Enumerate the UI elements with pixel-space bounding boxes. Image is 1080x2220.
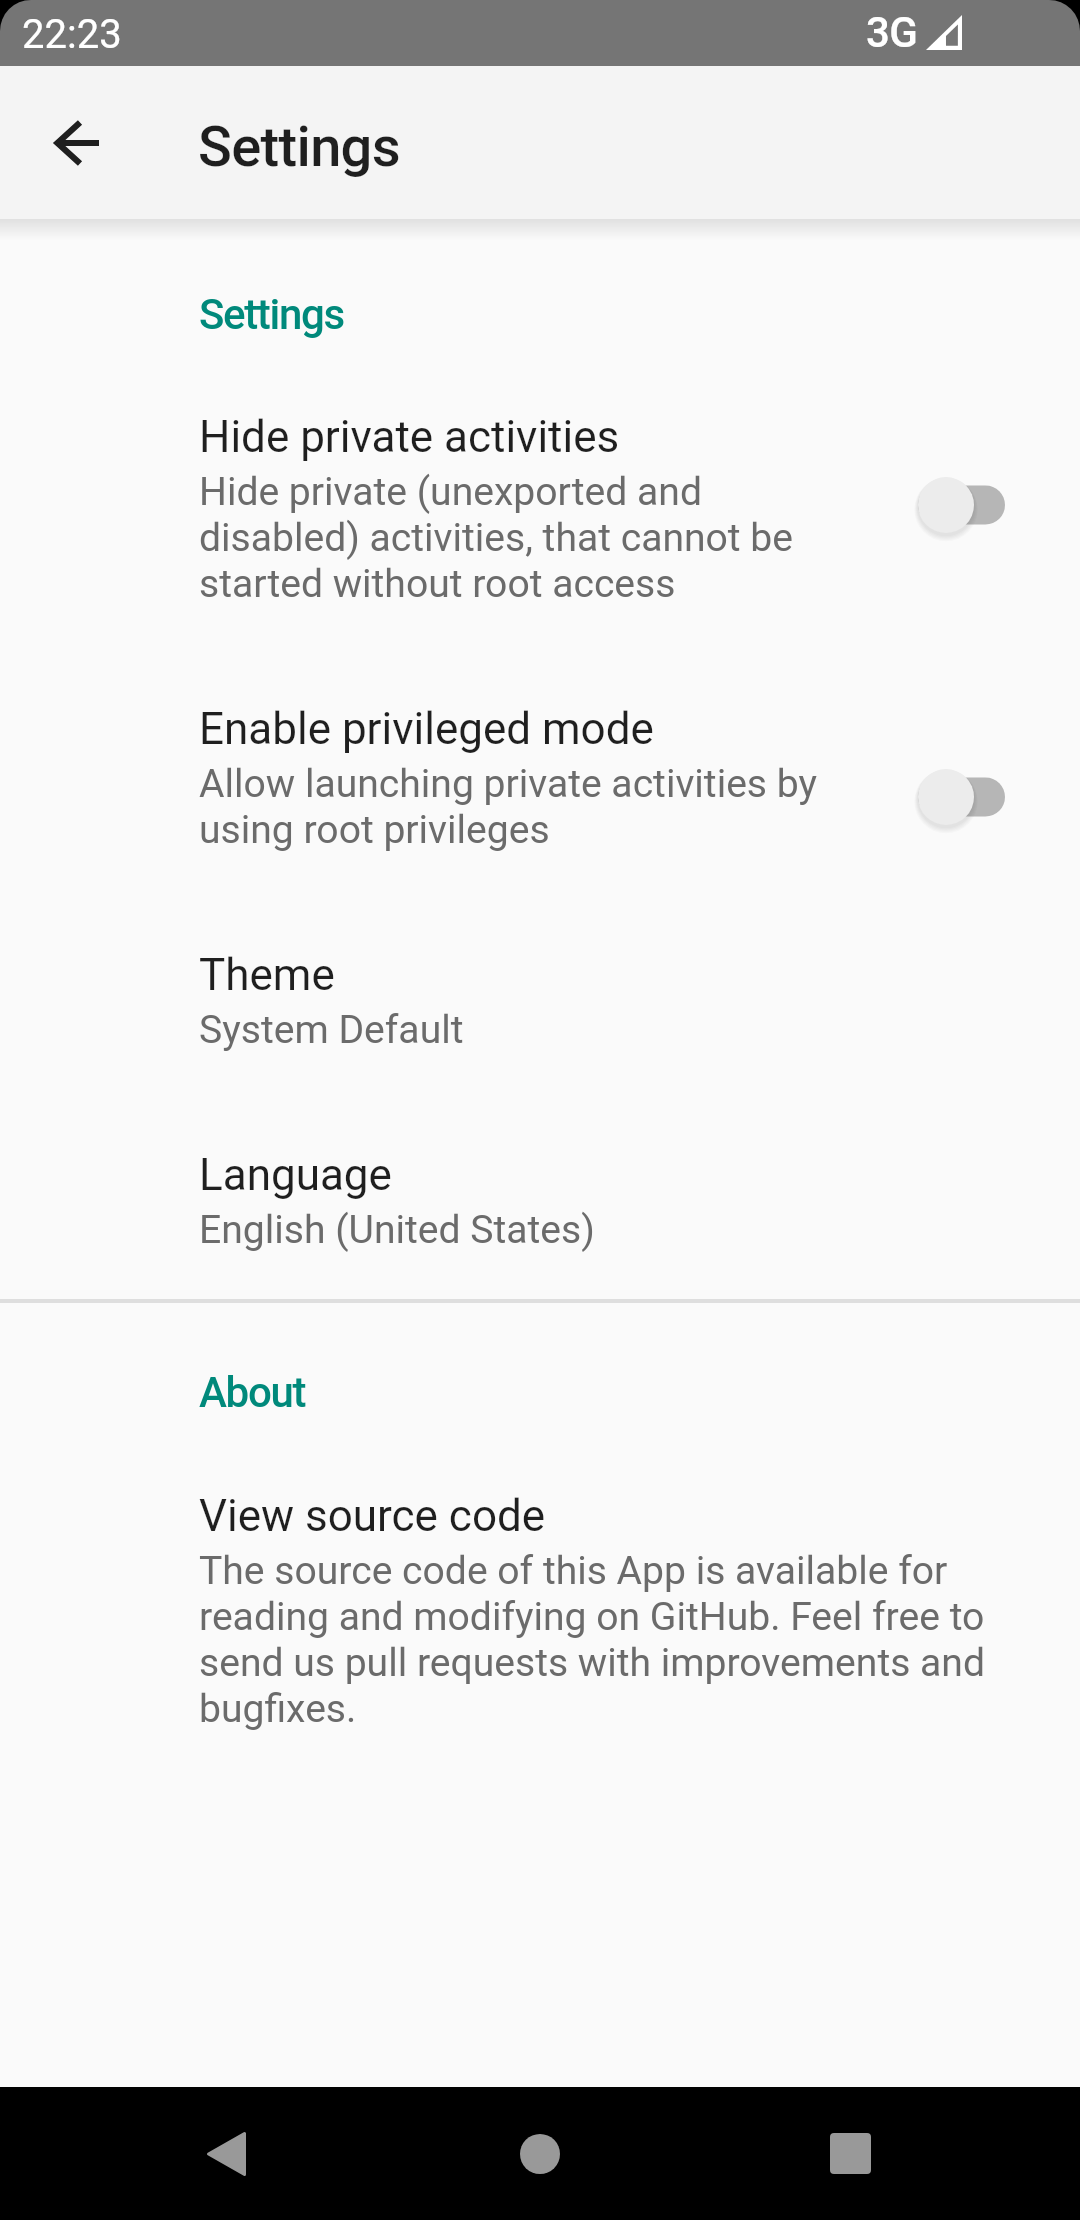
staticText: Settings — [199, 290, 344, 339]
staticText: Allow launching private activities by us… — [199, 761, 860, 853]
button[interactable]: Toggle — [898, 465, 1024, 545]
button[interactable]: View source code — [0, 1466, 1080, 1732]
button[interactable]: Toggle — [898, 757, 1024, 837]
staticText: Theme — [199, 949, 335, 1001]
staticText: Hide private activities — [199, 411, 620, 463]
button[interactable]: Enable privileged mode — [0, 679, 1080, 853]
button[interactable]: Recents — [770, 2087, 931, 2220]
staticText: 22:23 — [22, 11, 122, 58]
staticText: The source code of this App is available… — [199, 1548, 1003, 1732]
staticText: Settings — [198, 114, 400, 180]
button[interactable]: Hide private activities — [0, 387, 1080, 607]
staticText: Language — [199, 1149, 392, 1201]
staticText: Enable privileged mode — [199, 703, 654, 755]
button[interactable]: Home — [460, 2087, 620, 2220]
button[interactable]: Language — [0, 1125, 1080, 1253]
staticText: 3G — [866, 8, 918, 57]
staticText: About — [199, 1368, 306, 1417]
staticText: System Default — [199, 1007, 464, 1053]
staticText: View source code — [199, 1490, 546, 1542]
staticText: English (United States) — [199, 1207, 595, 1253]
button[interactable]: Back — [28, 95, 124, 191]
button[interactable]: Theme — [0, 925, 1080, 1053]
button[interactable]: Back — [146, 2087, 306, 2220]
staticText: Hide private (unexported and disabled) a… — [199, 469, 860, 607]
